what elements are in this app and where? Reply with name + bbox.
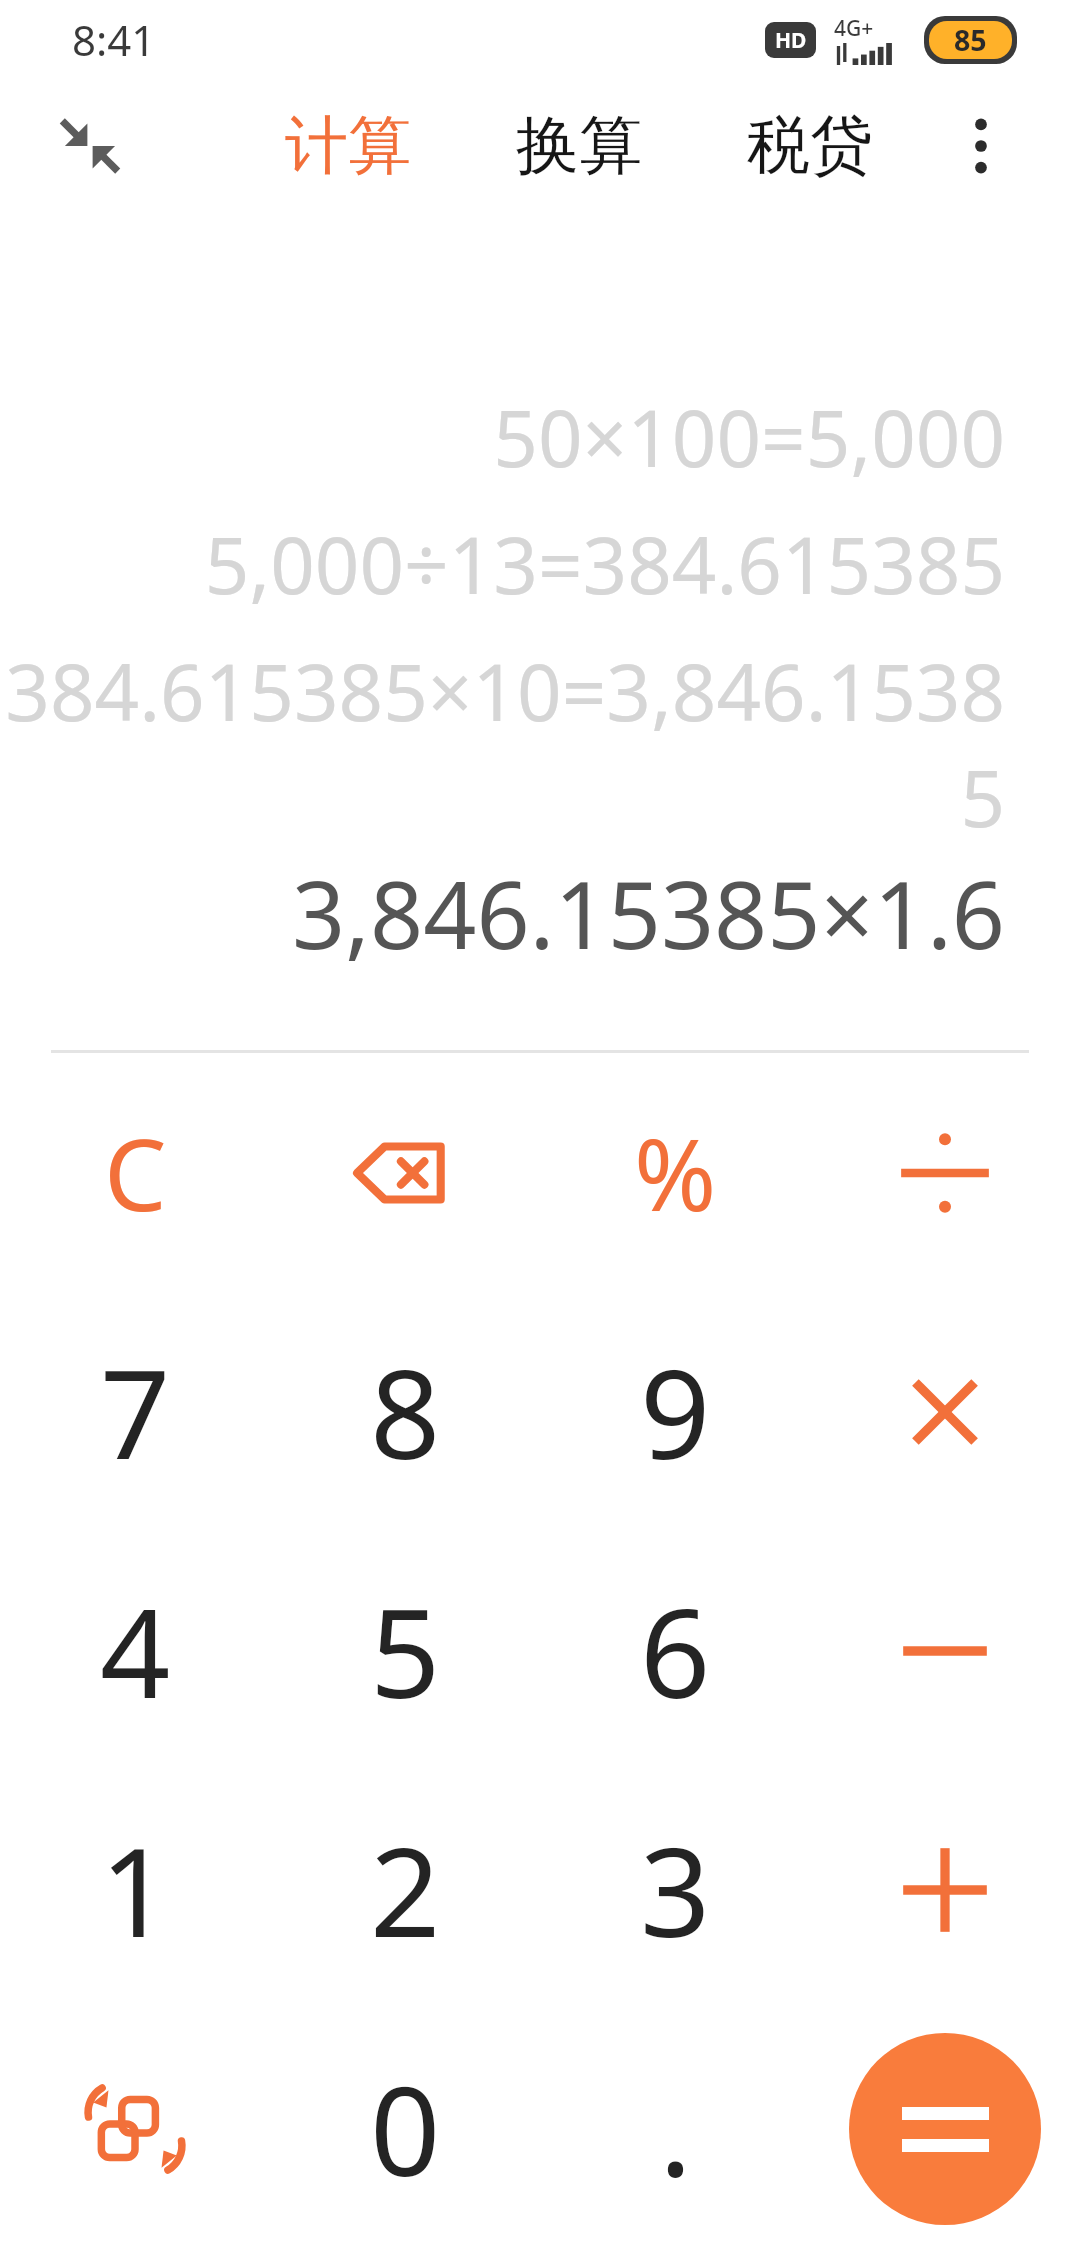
button[interactable]: Equals (849, 2033, 1041, 2225)
staticText: 384.615385×10=3,846.15385 (0, 638, 1005, 850)
button[interactable]: 1 (0, 1770, 270, 2009)
staticText: 3 (640, 1806, 711, 1974)
button[interactable]: 2 (270, 1770, 540, 2009)
button[interactable]: Multiply (810, 1292, 1080, 1531)
button[interactable]: 4 (0, 1531, 270, 1770)
button[interactable]: Subtract (810, 1531, 1080, 1770)
staticText: 85 (954, 21, 987, 59)
staticText: 50×100=5,000 (493, 384, 1005, 490)
button[interactable]: Unit conversion (0, 2009, 270, 2248)
button[interactable]: Add (810, 1770, 1080, 2009)
button[interactable]: 税贷 (726, 88, 894, 203)
staticText: 5,000÷13=384.615385 (204, 511, 1005, 617)
button[interactable]: % (540, 1053, 810, 1292)
button[interactable]: Divide (810, 1053, 1080, 1292)
button[interactable]: . (540, 2009, 810, 2248)
staticText: HD (775, 26, 807, 55)
staticText: 税贷 (747, 106, 873, 185)
button[interactable]: 计算 (264, 88, 432, 203)
button[interactable]: 9 (540, 1292, 810, 1531)
staticText: . (659, 2045, 692, 2213)
staticText: 4 (100, 1567, 171, 1735)
staticText: 8:41 (72, 11, 156, 68)
staticText: 9 (640, 1328, 711, 1496)
staticText: 4G+ (834, 14, 874, 43)
staticText: 2 (370, 1806, 441, 1974)
button[interactable]: 7 (0, 1292, 270, 1531)
staticText: 0 (370, 2045, 441, 2213)
staticText: 计算 (285, 106, 411, 185)
staticText: 8 (370, 1328, 441, 1496)
staticText: 换算 (516, 106, 642, 185)
staticText: 1 (100, 1806, 171, 1974)
button[interactable]: Collapse (6, 78, 174, 213)
button[interactable]: 6 (540, 1531, 810, 1770)
staticText: 3,846.15385×1.6 (291, 850, 1005, 977)
button[interactable]: Backspace (270, 1053, 540, 1292)
button[interactable]: More options (906, 78, 1056, 213)
staticText: C (104, 1105, 167, 1240)
button[interactable]: 8 (270, 1292, 540, 1531)
staticText: 6 (640, 1567, 711, 1735)
staticText: % (634, 1105, 717, 1240)
button[interactable]: 3 (540, 1770, 810, 2009)
button[interactable]: 换算 (495, 88, 663, 203)
button[interactable]: C (0, 1053, 270, 1292)
button[interactable]: 0 (270, 2009, 540, 2248)
button[interactable]: 5 (270, 1531, 540, 1770)
staticText: 7 (100, 1328, 171, 1496)
staticText: 5 (370, 1567, 441, 1735)
